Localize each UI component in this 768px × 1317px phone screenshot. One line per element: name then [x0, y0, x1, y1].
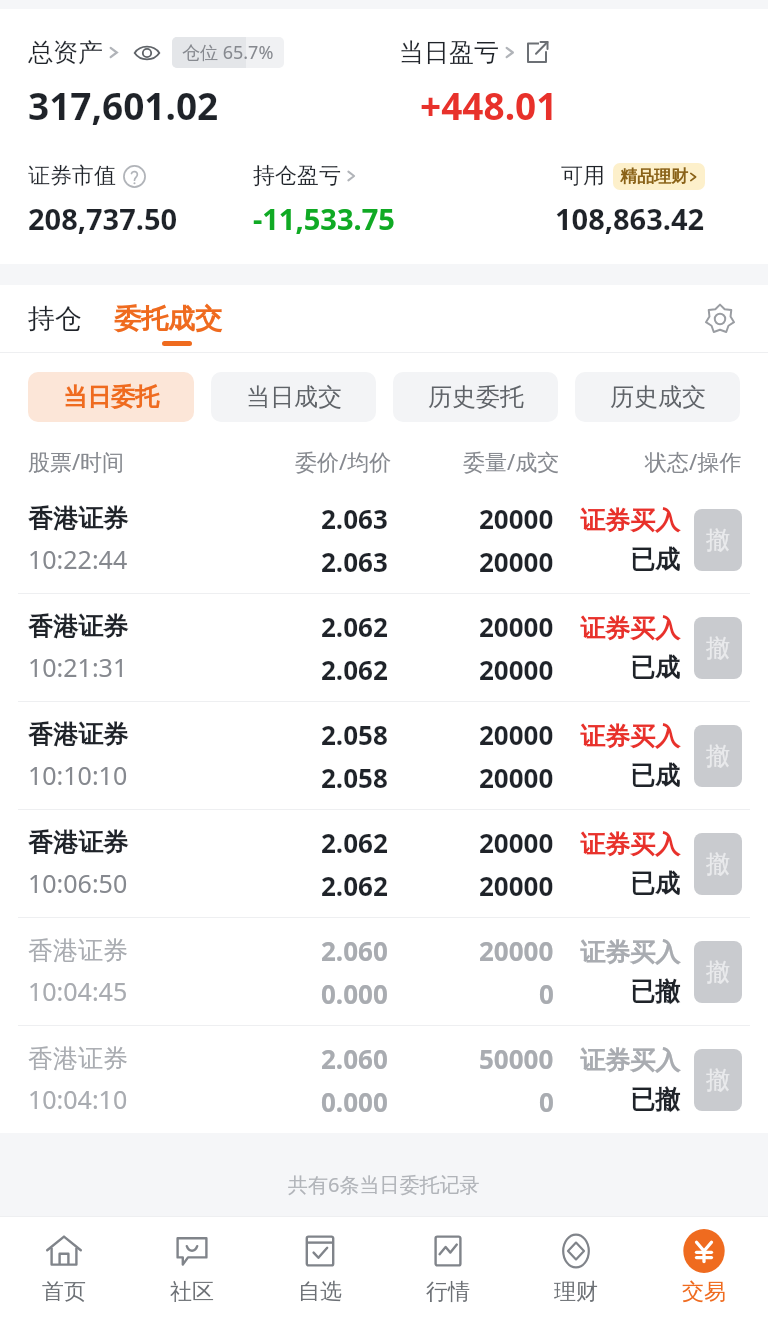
staticText: 10:04:10 [28, 1082, 128, 1116]
staticText: 总资产 [28, 37, 103, 68]
staticText: 2.058 [321, 717, 388, 752]
button[interactable]: 香港证券 [0, 702, 768, 809]
staticText: 香港证券 [28, 827, 128, 858]
staticText: 50000 [479, 1041, 554, 1076]
staticText: 当日盈亏 [399, 37, 499, 68]
staticText: 0.000 [321, 976, 388, 1011]
button[interactable]: 行情 [384, 1217, 512, 1317]
button[interactable]: 撤 [694, 833, 742, 895]
button[interactable]: 当日成交 [211, 372, 376, 422]
staticText: 10:06:50 [28, 866, 128, 900]
button[interactable]: 隐藏金额 [132, 38, 162, 68]
staticText: 委价/均价 [295, 446, 392, 476]
staticText: 可用 [561, 162, 605, 190]
staticText: 2.060 [321, 1041, 388, 1076]
staticText: 2.058 [321, 760, 388, 795]
staticText: 已成 [630, 760, 680, 791]
staticText: 20000 [479, 501, 554, 536]
staticText: 已撤 [630, 1084, 680, 1115]
staticText: 20000 [479, 717, 554, 752]
staticText: 撤 [706, 1065, 730, 1095]
staticText: 10:04:45 [28, 974, 128, 1008]
staticText: 证券买入 [580, 829, 680, 860]
button[interactable]: 证券市值 [28, 162, 146, 190]
staticText: 已撤 [630, 976, 680, 1007]
button[interactable]: 撤 [694, 725, 742, 787]
staticText: 20000 [479, 609, 554, 644]
staticText: 理财 [554, 1278, 598, 1306]
staticText: 2.062 [321, 652, 388, 687]
button[interactable]: 撤 [694, 617, 742, 679]
staticText: 自选 [298, 1278, 342, 1306]
button[interactable]: 理财 [512, 1217, 640, 1317]
button[interactable]: 历史委托 [393, 372, 558, 422]
staticText: 股票/时间 [28, 446, 125, 476]
staticText: 历史成交 [610, 382, 706, 412]
button[interactable]: 历史成交 [575, 372, 740, 422]
staticText: 状态/操作 [645, 446, 742, 476]
staticText: 证券买入 [580, 505, 680, 536]
staticText: 0.000 [321, 1084, 388, 1119]
button[interactable]: 撤 [694, 509, 742, 571]
button[interactable]: 香港证券 [0, 810, 768, 917]
staticText: 持仓 [28, 302, 82, 336]
staticText: 已成 [630, 868, 680, 899]
staticText: 20000 [479, 652, 554, 687]
staticText: 首页 [42, 1278, 86, 1306]
button[interactable]: 撤 [694, 1049, 742, 1111]
staticText: 10:21:31 [28, 650, 128, 684]
button[interactable]: 设置 [698, 297, 742, 341]
staticText: 社区 [170, 1278, 214, 1306]
staticText: 撤 [706, 525, 730, 555]
staticText: 0 [539, 1084, 554, 1119]
staticText: 撤 [706, 741, 730, 771]
staticText: 交易 [682, 1278, 726, 1306]
staticText: 证券买入 [580, 721, 680, 752]
button[interactable]: 社区 [128, 1217, 256, 1317]
button[interactable]: 交易 [640, 1217, 768, 1317]
staticText: 香港证券 [28, 719, 128, 750]
staticText: 10:10:10 [28, 758, 128, 792]
staticText: 317,601.02 [28, 80, 219, 130]
button[interactable]: 当日委托 [28, 372, 194, 422]
button[interactable]: 香港证券 [0, 486, 768, 593]
button[interactable]: 总资产 [28, 37, 120, 68]
staticText: 20000 [479, 544, 554, 579]
staticText: 2.062 [321, 868, 388, 903]
staticText: 2.060 [321, 933, 388, 968]
staticText: 委托成交 [114, 302, 222, 336]
staticText: 撤 [706, 633, 730, 663]
staticText: 行情 [426, 1278, 470, 1306]
staticText: 香港证券 [28, 503, 128, 534]
staticText: +448.01 [420, 80, 558, 130]
staticText: 证券买入 [580, 613, 680, 644]
button[interactable]: 香港证券 [0, 1026, 768, 1133]
staticText: 委量/成交 [463, 446, 560, 476]
staticText: 2.063 [321, 501, 388, 536]
staticText: -11,533.75 [253, 199, 395, 238]
staticText: 20000 [479, 933, 554, 968]
button[interactable]: 撤 [694, 941, 742, 1003]
staticText: 2.063 [321, 544, 388, 579]
staticText: 当日委托 [63, 382, 159, 412]
button[interactable]: 首页 [0, 1217, 128, 1317]
staticText: 2.062 [321, 825, 388, 860]
button[interactable]: 香港证券 [0, 918, 768, 1025]
staticText: 20000 [479, 825, 554, 860]
staticText: 香港证券 [28, 1043, 128, 1074]
staticText: 共有6条当日委托记录 [288, 1171, 480, 1198]
staticText: 2.062 [321, 609, 388, 644]
button[interactable]: 持仓盈亏 [253, 162, 357, 190]
button[interactable]: 仓位 65.7% [172, 37, 284, 68]
button[interactable]: 精品理财 [613, 163, 705, 190]
button[interactable]: 香港证券 [0, 594, 768, 701]
staticText: 撤 [706, 957, 730, 987]
button[interactable]: 自选 [256, 1217, 384, 1317]
button[interactable]: 当日盈亏 [399, 37, 549, 68]
button[interactable]: 持仓 [28, 302, 84, 336]
staticText: 仓位 65.7% [182, 40, 274, 65]
staticText: 证券买入 [580, 937, 680, 968]
staticText: 已成 [630, 544, 680, 575]
staticText: 10:22:44 [28, 542, 128, 576]
button[interactable]: 委托成交 [114, 302, 222, 336]
